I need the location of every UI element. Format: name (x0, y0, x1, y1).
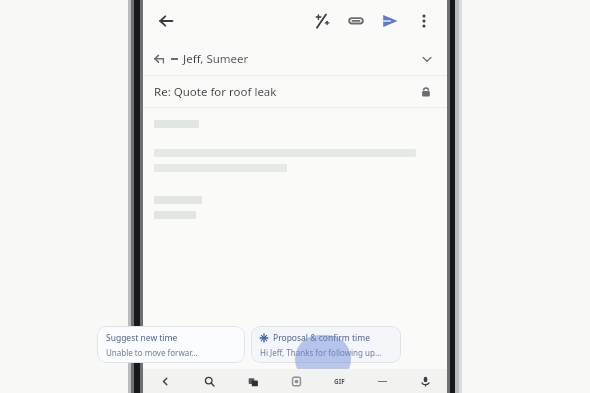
button[interactable]: Stickers (231, 369, 275, 393)
staticText: Re: Quote for roof leak (154, 84, 277, 100)
staticText: Jeff, Sumeer (183, 51, 249, 67)
button[interactable]: Re: Quote for roof leak (143, 76, 447, 107)
button[interactable]: Jeff, Sumeer (143, 42, 447, 75)
button[interactable]: Attach (339, 4, 373, 38)
button[interactable]: Search (187, 369, 231, 393)
button[interactable]: Back (143, 369, 187, 393)
staticText: GIF (334, 377, 345, 386)
button[interactable]: GIF (318, 369, 361, 393)
button[interactable]: Expand recipients (417, 49, 437, 69)
button[interactable]: Suggest new time (97, 326, 245, 363)
button[interactable]: Minimize (361, 369, 404, 393)
button[interactable]: Proposal & confirm time (251, 326, 401, 363)
button[interactable]: Send (373, 4, 407, 38)
button[interactable]: Formatting (305, 4, 339, 38)
staticText: Hi Jeff, Thanks for following up… (260, 347, 382, 358)
button[interactable]: More options (407, 4, 441, 38)
staticText: Proposal & confirm time (273, 332, 370, 344)
button[interactable]: Back (149, 4, 183, 38)
button[interactable]: Encryption (416, 82, 436, 102)
button[interactable]: Clipboard (275, 369, 318, 393)
button[interactable] (143, 108, 447, 321)
staticText: Unable to move forwar… (106, 347, 198, 358)
button[interactable]: Voice (404, 369, 447, 393)
staticText: Suggest new time (106, 332, 178, 344)
